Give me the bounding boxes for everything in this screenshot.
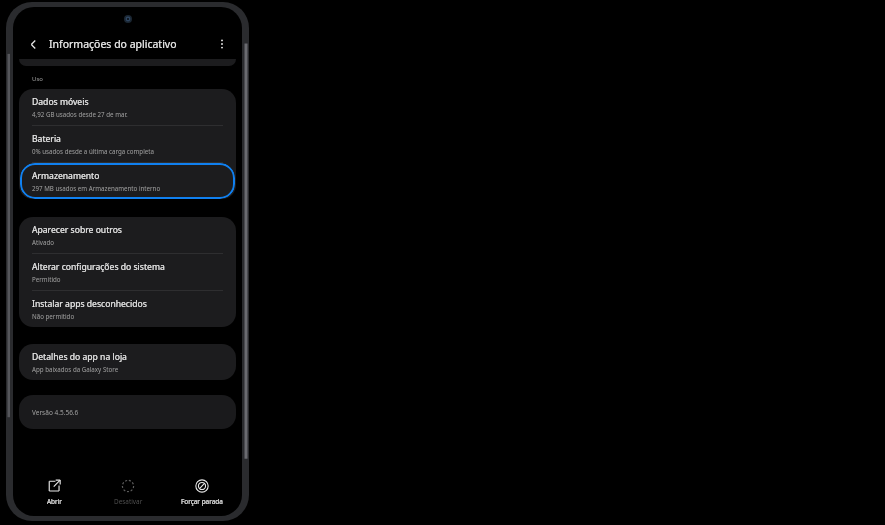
button[interactable]: Abrir <box>17 475 91 510</box>
staticText: Versão 4.5.56.6 <box>32 408 79 417</box>
button[interactable]: Voltar <box>23 34 43 54</box>
staticText: Ativado <box>32 238 54 246</box>
staticText: Aparecer sobre outros <box>32 224 122 236</box>
staticText: Informações do aplicativo <box>49 37 212 51</box>
staticText: Dados móveis <box>32 96 89 108</box>
staticText: Bateria <box>32 133 61 145</box>
button[interactable]: Instalar apps desconhecidos <box>19 291 236 327</box>
staticText: Desativar <box>114 497 143 506</box>
staticText: Alterar configurações do sistema <box>32 261 165 273</box>
button[interactable]: Detalhes do app na loja <box>19 344 236 380</box>
button[interactable]: Versão 4.5.56.6 <box>19 395 236 429</box>
button[interactable]: Forçar parada <box>165 475 238 510</box>
button[interactable]: Desativar <box>91 475 165 510</box>
staticText: 297 MB usados em Armazenamento interno <box>32 184 161 192</box>
button[interactable]: Dados móveis <box>19 89 236 125</box>
staticText: Abrir <box>47 497 62 506</box>
staticText: Uso <box>32 75 43 83</box>
staticText: Forçar parada <box>181 497 223 506</box>
staticText: Armazenamento <box>32 170 100 182</box>
button[interactable]: Bateria <box>19 126 236 162</box>
staticText: 4,92 GB usados desde 27 de mar. <box>32 110 128 118</box>
staticText: Detalhes do app na loja <box>32 351 127 363</box>
staticText: Permitido <box>32 275 61 283</box>
button[interactable]: Alterar configurações do sistema <box>19 254 236 290</box>
button[interactable]: Detalhes do app na loja <box>19 344 236 380</box>
staticText: 0% usados desde a última carga completa <box>32 147 154 155</box>
staticText: Instalar apps desconhecidos <box>32 298 147 310</box>
button[interactable]: Mais opções <box>212 34 232 54</box>
button[interactable]: Aparecer sobre outros <box>19 217 236 253</box>
staticText: Não permitido <box>32 312 75 320</box>
staticText: App baixados da Galaxy Store <box>32 365 119 373</box>
button[interactable]: Armazenamento <box>20 163 235 199</box>
